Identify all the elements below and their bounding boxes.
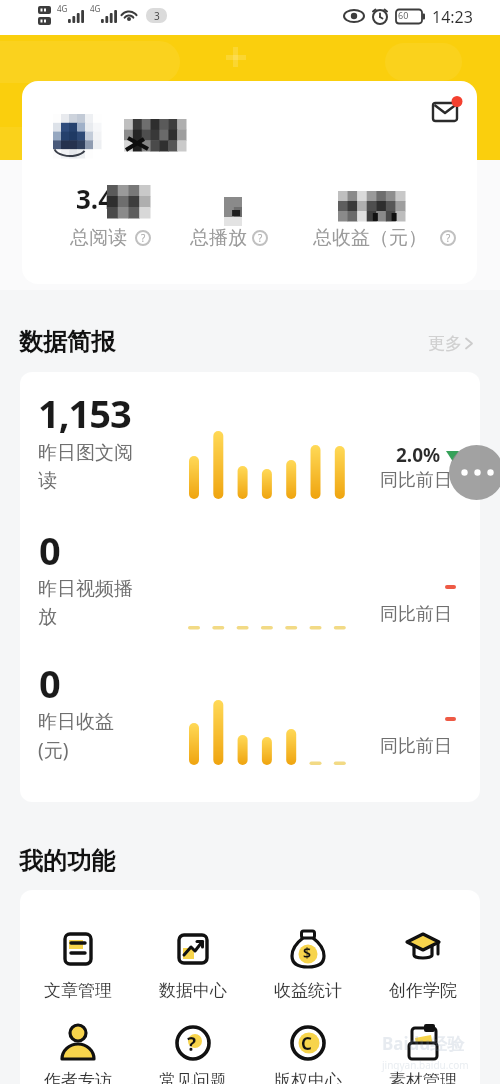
staticText: jingyan.baidu.com: [382, 1058, 469, 1072]
staticText: 素材管理: [389, 1070, 457, 1084]
staticText: 数据中心: [159, 980, 227, 1001]
staticText: 60: [398, 9, 409, 21]
staticText: 收益统计: [274, 980, 342, 1001]
button[interactable]: [426, 93, 462, 127]
staticText: 0: [39, 524, 61, 576]
staticText: $: [303, 943, 312, 962]
staticText: 更多: [428, 333, 462, 354]
staticText: ?: [141, 231, 146, 245]
staticText: 14:23: [432, 6, 473, 28]
staticText: 总收益（元）: [313, 226, 427, 250]
staticText: 总播放: [190, 226, 247, 250]
staticText: ?: [446, 231, 451, 245]
button[interactable]: 创作学院: [365, 928, 480, 1001]
button[interactable]: C: [250, 1022, 365, 1084]
staticText: 同比前日: [380, 603, 452, 626]
staticText: 2.0%: [396, 442, 441, 468]
button[interactable]: $: [250, 928, 365, 1001]
staticText: 同比前日: [380, 469, 452, 492]
staticText: 3: [154, 9, 160, 23]
button[interactable]: 作者专访: [20, 1022, 135, 1084]
button[interactable]: ?: [135, 1022, 250, 1084]
staticText: 常见问题: [159, 1070, 227, 1084]
staticText: 昨日图文阅 读: [38, 441, 133, 493]
staticText: 作者专访: [44, 1070, 112, 1084]
staticText: 总阅读: [70, 226, 127, 250]
staticText: ?: [187, 1031, 197, 1057]
staticText: ?: [258, 231, 263, 245]
staticText: 昨日收益 (元): [38, 710, 114, 763]
staticText: 创作学院: [389, 980, 457, 1001]
staticText: 版权中心: [274, 1070, 342, 1084]
staticText: 3.4: [76, 181, 114, 216]
staticText: 数据简报: [19, 327, 115, 357]
staticText: C: [301, 1032, 312, 1055]
button[interactable]: 文章管理: [20, 928, 135, 1001]
staticText: 0: [39, 657, 61, 709]
button[interactable]: 素材管理: [365, 1022, 480, 1084]
button[interactable]: 数据中心: [135, 928, 250, 1001]
staticText: 文章管理: [44, 980, 112, 1001]
button[interactable]: [449, 445, 500, 500]
staticText: 同比前日: [380, 735, 452, 758]
staticText: 昨日视频播 放: [38, 577, 133, 629]
staticText: Baidu经验: [382, 1032, 465, 1055]
button[interactable]: 更多: [428, 333, 473, 354]
staticText: 1,153: [38, 387, 131, 439]
staticText: 我的功能: [19, 846, 115, 876]
staticText: 4G: [90, 3, 101, 14]
staticText: 4G: [57, 3, 68, 14]
